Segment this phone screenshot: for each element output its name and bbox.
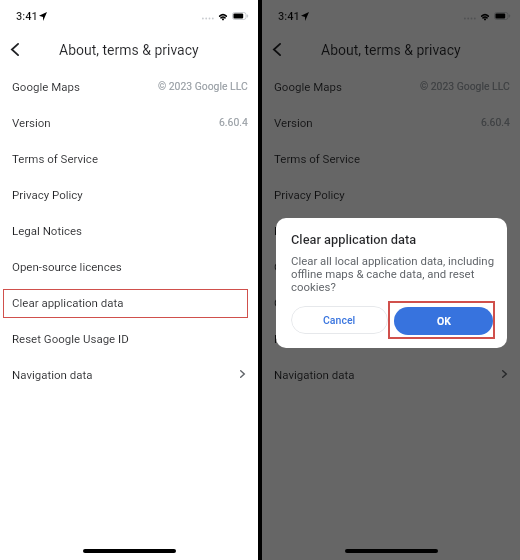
staticText: Clear application data [12,296,124,309]
button[interactable]: Reset Google Usage ID [262,320,520,356]
staticText: Reset Google Usage ID [274,332,391,345]
button[interactable]: Navigation data [0,356,258,392]
button[interactable]: Privacy Policy [262,176,520,212]
staticText: Privacy Policy [274,188,345,201]
staticText: 3:41 [278,10,300,23]
staticText: Version [12,116,51,129]
button[interactable]: Legal Notices [0,212,258,248]
staticText: About, terms & privacy [59,42,199,58]
button[interactable]: Google Maps [262,68,520,104]
staticText: 3:41 [16,10,38,23]
button[interactable]: Version [0,104,258,140]
staticText: Reset Google Usage ID [12,332,129,345]
button[interactable]: Open-source licences [262,248,520,284]
staticText: Cancel [323,314,356,326]
staticText: OK [437,315,451,327]
staticText: Navigation data [12,368,93,381]
button[interactable]: Legal Notices [262,212,520,248]
staticText: Legal Notices [274,224,345,237]
button[interactable]: Version [262,104,520,140]
staticText: Terms of Service [274,152,360,165]
button[interactable]: Navigation data [262,356,520,392]
button[interactable]: Reset Google Usage ID [0,320,258,356]
staticText: 6.60.4 [481,116,510,128]
button[interactable]: OK [394,307,493,335]
button[interactable]: Back [265,37,289,61]
staticText: © 2023 Google LLC [158,80,248,92]
button[interactable]: Privacy Policy [0,176,258,212]
button[interactable]: Cancel [291,306,388,334]
staticText: Terms of Service [12,152,98,165]
staticText: Navigation data [274,368,355,381]
staticText: Clear all local application data, includ… [291,254,498,293]
button[interactable]: Terms of Service [0,140,258,176]
staticText: Clear application data [274,296,386,309]
staticText: Version [274,116,313,129]
button[interactable]: Google Maps [0,68,258,104]
button[interactable]: Open-source licences [0,248,258,284]
staticText: Open-source licences [12,260,122,273]
staticText: Google Maps [12,80,80,93]
staticText: © 2023 Google LLC [420,80,510,92]
staticText: Google Maps [274,80,342,93]
staticText: Open-source licences [274,260,384,273]
button[interactable]: Back [3,37,27,61]
staticText: Clear application data [291,232,417,247]
staticText: About, terms & privacy [321,42,461,58]
button[interactable]: Clear application data [0,284,258,320]
staticText: 6.60.4 [219,116,248,128]
button[interactable]: Terms of Service [262,140,520,176]
button[interactable]: Clear application data [262,284,520,320]
staticText: Privacy Policy [12,188,83,201]
staticText: Legal Notices [12,224,83,237]
